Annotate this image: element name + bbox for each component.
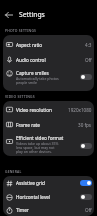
staticText: Assistive grid (16, 180, 45, 186)
button[interactable]: Efficient video format (3, 132, 94, 154)
button[interactable]: Audio control (3, 52, 94, 67)
staticText: Video resolution (16, 107, 52, 113)
button[interactable]: Toggle (80, 180, 92, 186)
staticText: GENERAL (5, 169, 22, 174)
staticText: Settings (19, 10, 45, 19)
staticText: Audio control (16, 57, 46, 63)
staticText: Efficient video format (16, 135, 64, 141)
staticText: PHOTO SETTINGS (5, 28, 37, 33)
button[interactable]: Aspect ratio (3, 37, 94, 52)
staticText: 30 fps (78, 122, 92, 128)
staticText: Timer (16, 207, 29, 213)
button[interactable]: Back (3, 9, 14, 20)
button[interactable]: Toggle (80, 74, 92, 80)
staticText: Horizontal level (16, 194, 51, 200)
staticText: Aspect ratio (16, 42, 43, 48)
staticText: Videos take up about 35% less space, but… (16, 141, 62, 154)
staticText: Frame rate (16, 122, 40, 128)
staticText: VIDEO SETTINGS (5, 94, 35, 99)
staticText: Automatically take photos people smile (16, 76, 62, 85)
button[interactable]: Toggle (80, 143, 92, 149)
button[interactable]: Capture smiles (3, 67, 94, 87)
staticText: 1920x1080 (68, 107, 92, 113)
button[interactable]: Assistive grid (3, 176, 94, 190)
button[interactable]: Timer (3, 204, 94, 216)
button[interactable]: Toggle (80, 194, 92, 200)
button[interactable]: Horizontal level (3, 190, 94, 204)
button[interactable]: Frame rate (3, 117, 94, 132)
staticText: Capture smiles (16, 70, 49, 76)
staticText: Off (85, 57, 92, 63)
staticText: Off (85, 207, 92, 213)
button[interactable]: Video resolution (3, 102, 94, 117)
staticText: 4:3 (85, 42, 92, 48)
